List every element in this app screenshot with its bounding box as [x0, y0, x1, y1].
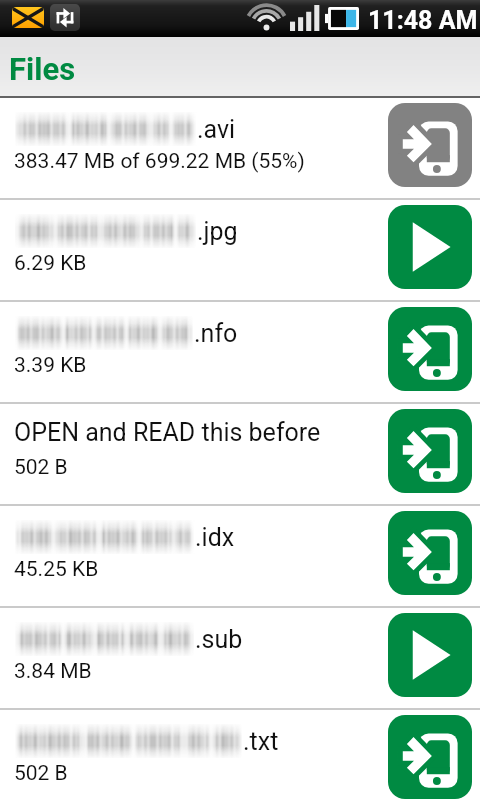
button[interactable]: .nfo [0, 302, 480, 404]
button[interactable]: .avi [0, 98, 480, 200]
button[interactable]: OPEN and READ this before playing this [0, 404, 480, 506]
staticText: 502 B [14, 455, 68, 480]
button[interactable]: Save to device [388, 511, 472, 595]
button[interactable]: .idx [0, 506, 480, 608]
staticText: 6.29 KB [14, 251, 87, 276]
staticText: 502 B [14, 761, 68, 786]
staticText: 45.25 KB [14, 557, 99, 582]
button[interactable]: .txt [0, 710, 480, 800]
other: Wi-Fi [250, 4, 283, 31]
staticText: 3.84 MB [14, 659, 92, 684]
button[interactable]: Play [388, 205, 472, 289]
button[interactable]: .jpg [0, 200, 480, 302]
button[interactable]: .sub [0, 608, 480, 710]
button[interactable]: Save to device [388, 103, 472, 187]
staticText: 383.47 MB of 699.22 MB (55%) [14, 149, 305, 174]
staticText: .jpg [197, 217, 238, 246]
staticText: .avi [197, 115, 236, 144]
staticText: OPEN and READ this before playing this [14, 418, 378, 447]
staticText: 11:48 AM [368, 6, 478, 35]
button[interactable]: Save to device [388, 715, 472, 799]
staticText: Files [9, 51, 76, 87]
button[interactable]: New email [12, 7, 44, 28]
staticText: .txt [243, 727, 279, 756]
button[interactable]: Save to device [388, 307, 472, 391]
staticText: .sub [195, 625, 243, 654]
staticText: 3.39 KB [14, 353, 87, 378]
staticText: .idx [195, 523, 235, 552]
other: Battery [325, 7, 359, 30]
button[interactable]: Sync [50, 4, 80, 31]
other: Signal strength [290, 5, 319, 31]
staticText: .nfo [194, 319, 238, 348]
button[interactable]: Play [388, 613, 472, 697]
button[interactable]: Save to device [388, 409, 472, 493]
